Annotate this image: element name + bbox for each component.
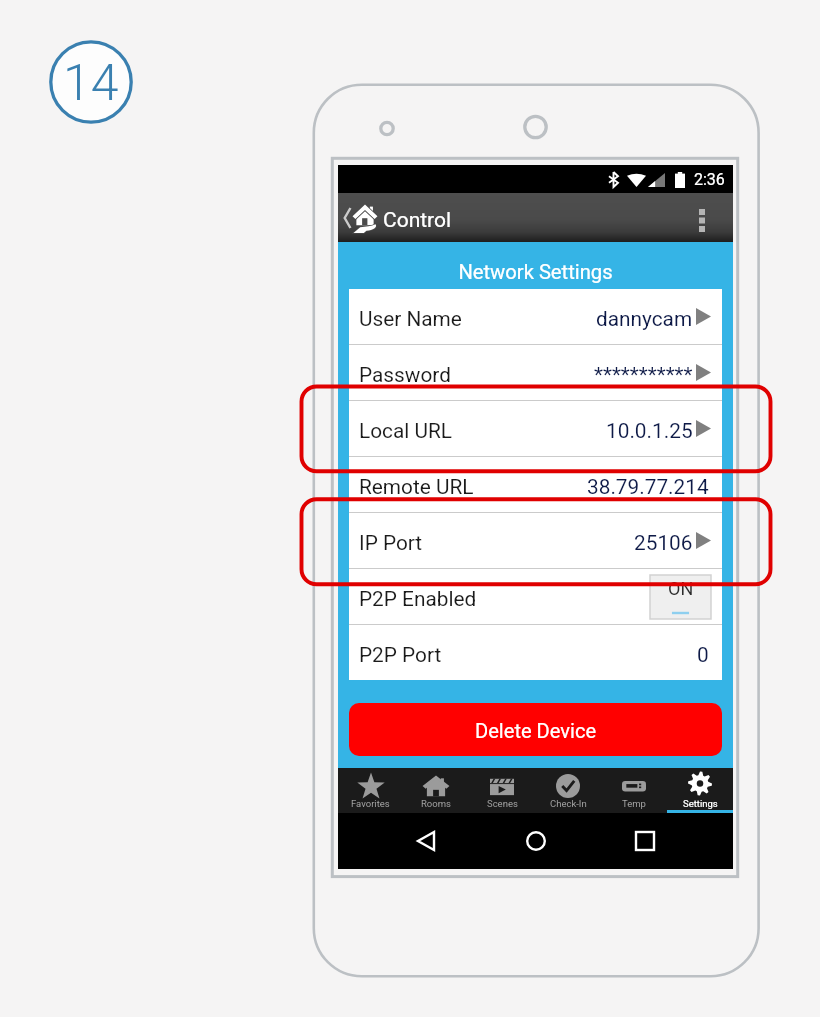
staticText: P2P Port	[359, 643, 442, 667]
button[interactable]: More options	[689, 205, 715, 231]
button[interactable]: Check-In	[535, 768, 601, 813]
staticText: Check-In	[550, 798, 587, 809]
staticText: 25106	[634, 531, 693, 555]
staticText: Scenes	[487, 798, 518, 809]
staticText: Local URL	[359, 419, 452, 443]
button[interactable]: Local URL	[349, 401, 722, 456]
staticText: 0	[697, 643, 709, 667]
staticText: ON	[668, 578, 694, 599]
button[interactable]: Rooms	[403, 768, 469, 813]
staticText: Network Settings	[338, 260, 733, 284]
staticText: 38.79.77.214	[587, 475, 709, 499]
button[interactable]: Favorites	[338, 768, 403, 813]
staticText: P2P Enabled	[359, 587, 477, 611]
button[interactable]: P2P Port	[349, 625, 722, 680]
staticText: Settings	[683, 798, 718, 809]
staticText: 10.0.1.25	[606, 419, 693, 443]
staticText: 2:36	[694, 170, 725, 189]
staticText: Control	[383, 208, 452, 233]
button[interactable]: Delete Device	[349, 703, 722, 756]
staticText: ***********	[594, 363, 693, 387]
staticText: Temp	[622, 798, 646, 809]
staticText: 14	[63, 54, 119, 113]
staticText: Rooms	[421, 798, 451, 809]
button[interactable]: Temp	[601, 768, 667, 813]
staticText: Favorites	[351, 798, 390, 809]
button[interactable]: Home	[514, 819, 558, 863]
staticText: Delete Device	[475, 719, 597, 743]
button[interactable]: Back	[404, 819, 448, 863]
staticText: Password	[359, 363, 451, 387]
staticText: User Name	[359, 307, 462, 331]
staticText: dannycam	[596, 307, 693, 331]
button[interactable]: IP Port	[349, 513, 722, 568]
button[interactable]: Settings	[667, 768, 733, 813]
button[interactable]: User Name	[349, 289, 722, 344]
button[interactable]: Password	[349, 345, 722, 400]
staticText: IP Port	[359, 531, 423, 555]
button[interactable]: Control	[338, 203, 452, 232]
staticText: Remote URL	[359, 475, 474, 499]
button[interactable]: Recents	[623, 819, 667, 863]
button[interactable]: Scenes	[469, 768, 535, 813]
button[interactable]: ON	[650, 575, 711, 619]
button[interactable]: Remote URL	[349, 457, 722, 512]
